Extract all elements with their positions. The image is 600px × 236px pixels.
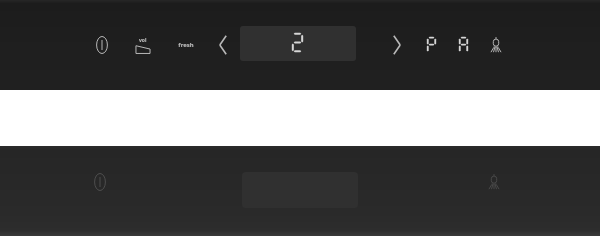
button[interactable]: Power <box>86 29 118 61</box>
staticText: fresh <box>178 41 194 49</box>
button[interactable]: Auto programme <box>450 28 476 62</box>
staticText: vol <box>139 37 147 44</box>
button[interactable]: Next <box>382 28 412 62</box>
button[interactable]: Program display <box>240 26 356 61</box>
button[interactable]: Previous <box>208 28 238 62</box>
button[interactable]: fresh <box>168 28 204 62</box>
button[interactable]: Interior light <box>480 29 512 61</box>
button[interactable]: Interior light <box>478 166 510 198</box>
button[interactable]: Power <box>84 166 116 198</box>
button[interactable]: Volume / half load <box>126 28 160 62</box>
button[interactable]: Programme P <box>418 28 444 62</box>
